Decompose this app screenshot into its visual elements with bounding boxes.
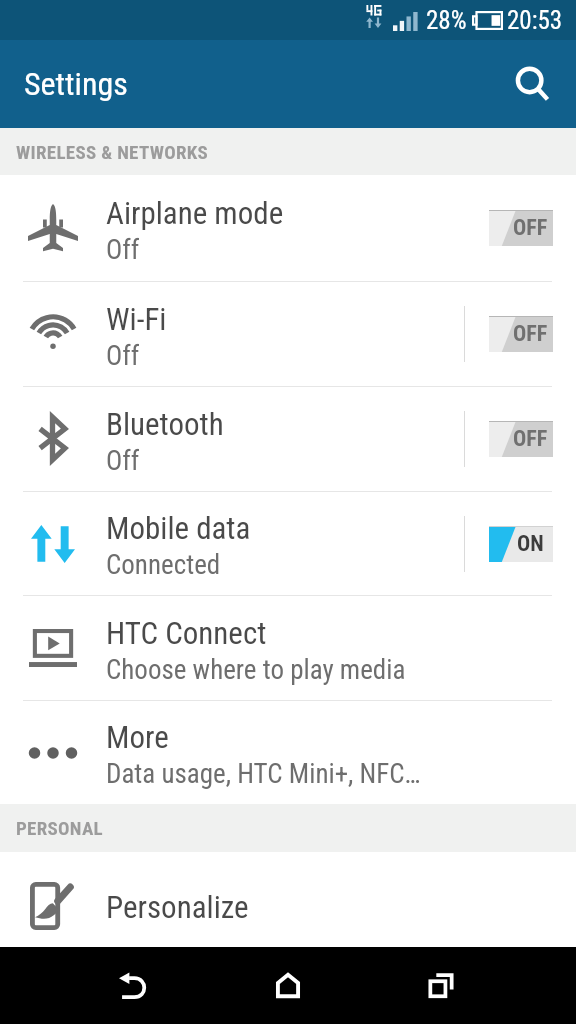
staticText: 28% [426,6,467,35]
staticText: Settings [24,65,128,103]
button[interactable]: OFF [489,421,553,457]
button[interactable]: Back [78,947,188,1024]
button[interactable]: Mobile data [0,492,576,595]
staticText: Off [106,340,140,372]
staticText: ON [517,531,544,557]
button[interactable]: OFF [489,210,553,246]
staticText: OFF [513,426,548,452]
button[interactable]: HTC Connect [0,596,576,700]
staticText: OFF [513,215,548,241]
button[interactable]: Airplane mode [0,175,576,281]
button[interactable]: Recent apps [386,947,496,1024]
staticText: Mobile data [106,510,251,546]
button[interactable]: More [0,701,576,804]
staticText: More [106,719,169,755]
button[interactable]: Home [233,947,343,1024]
button[interactable]: Personalize [0,852,576,947]
staticText: HTC Connect [106,615,267,651]
staticText: PERSONAL [16,817,103,839]
staticText: Choose where to play media [106,654,406,686]
button[interactable]: Search [488,40,576,128]
staticText: WIRELESS & NETWORKS [16,141,209,163]
button[interactable]: Bluetooth [0,387,576,491]
staticText: Connected [106,549,221,581]
staticText: 20:53 [507,6,563,35]
staticText: Off [106,445,140,477]
button[interactable]: ON [489,526,553,562]
button[interactable]: Wi-Fi [0,282,576,386]
staticText: Data usage, HTC Mini+, NFC… [106,758,421,790]
staticText: Off [106,234,140,266]
button[interactable]: OFF [489,316,553,352]
staticText: Airplane mode [106,195,284,231]
staticText: OFF [513,321,548,347]
staticText: Wi-Fi [106,301,167,337]
staticText: Bluetooth [106,406,224,442]
staticText: Personalize [106,889,249,925]
